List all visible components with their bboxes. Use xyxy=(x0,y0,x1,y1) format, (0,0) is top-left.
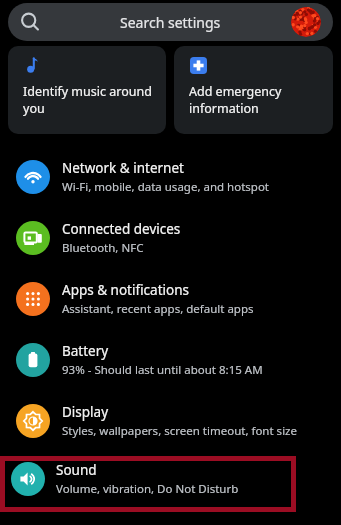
button[interactable]: Network & internet xyxy=(0,146,341,207)
staticText: Search settings xyxy=(120,13,221,32)
staticText: Connected devices xyxy=(62,220,181,238)
other: Search xyxy=(19,11,41,33)
staticText: Network & internet xyxy=(62,159,184,177)
button[interactable]: Connected devices xyxy=(0,207,341,268)
staticText: Display xyxy=(62,403,109,421)
button[interactable]: Battery xyxy=(0,329,341,390)
button[interactable]: Search xyxy=(8,3,333,41)
button[interactable]: Account xyxy=(291,7,321,37)
staticText: Bluetooth, NFC xyxy=(62,240,144,256)
staticText: Wi-Fi, mobile, data usage, and hotspot xyxy=(62,179,269,195)
staticText: Sound xyxy=(56,461,97,479)
staticText: Volume, vibration, Do Not Disturb xyxy=(56,481,239,497)
staticText: Battery xyxy=(62,342,109,360)
staticText: Styles, wallpapers, screen timeout, font… xyxy=(62,423,297,439)
staticText: Add emergency information xyxy=(189,83,323,117)
button[interactable]: Identify music around you xyxy=(8,46,166,134)
button[interactable]: Sound xyxy=(0,456,296,502)
button[interactable]: Apps & notifications xyxy=(0,268,341,329)
staticText: Apps & notifications xyxy=(62,281,189,299)
button[interactable]: Display xyxy=(0,390,341,451)
staticText: 93% - Should last until about 8:15 AM xyxy=(62,362,263,378)
staticText: Identify music around you xyxy=(23,83,156,117)
button[interactable]: Add emergency information xyxy=(174,46,333,134)
staticText: Assistant, recent apps, default apps xyxy=(62,301,254,317)
